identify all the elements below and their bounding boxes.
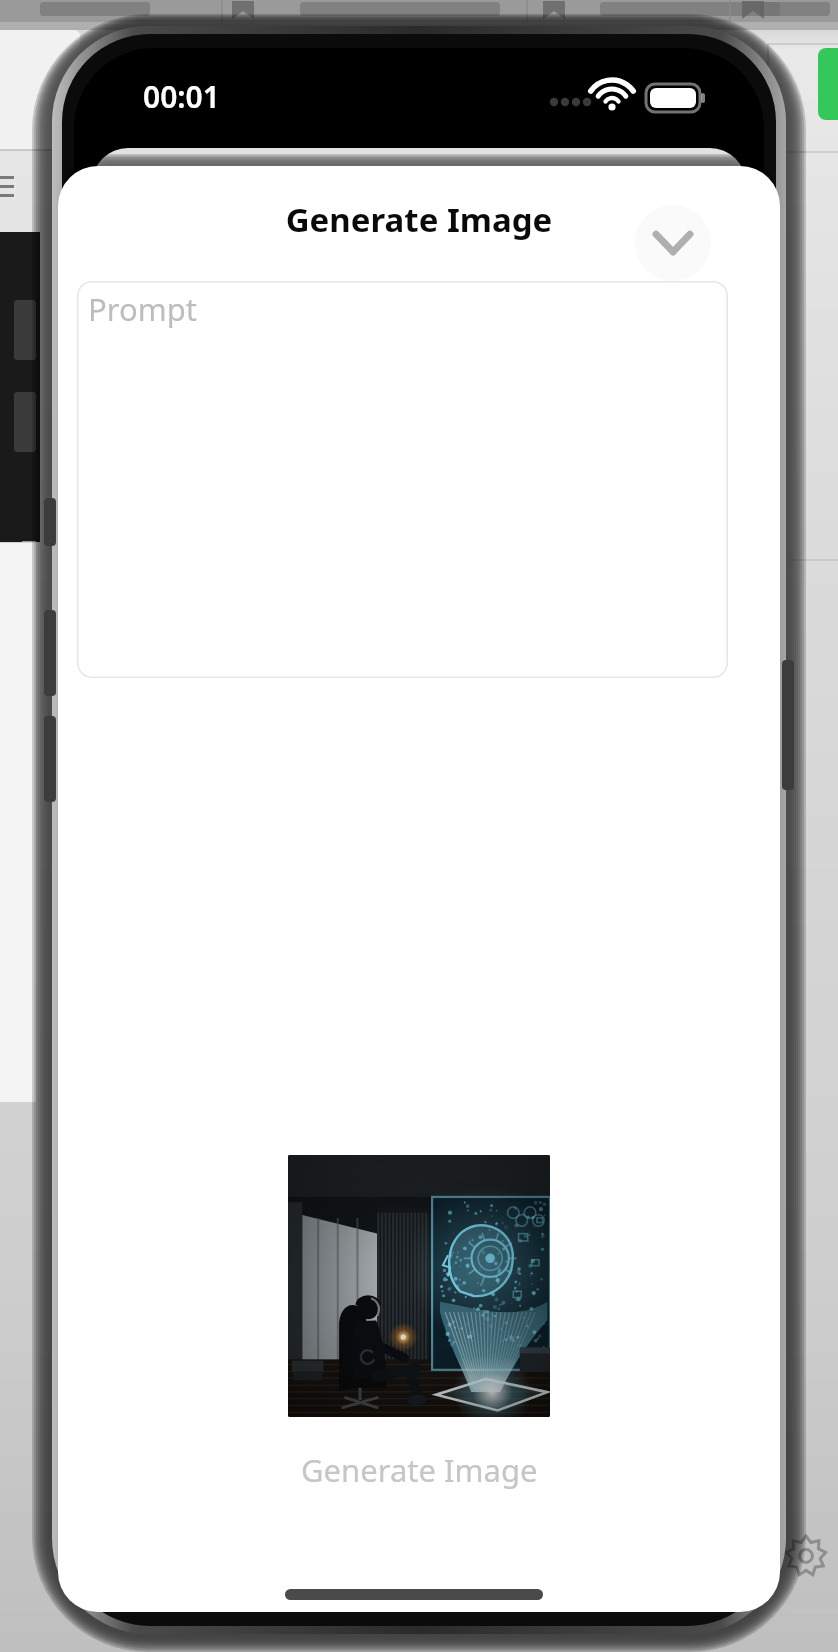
button[interactable]: Prompt [77,281,728,678]
button[interactable]: Generated image preview [288,1155,550,1417]
staticText: Prompt [88,288,197,330]
staticText: Generate Image [0,197,838,242]
staticText: 00:01 [143,76,220,117]
button[interactable]: Generate Image [281,1443,558,1497]
button[interactable]: Collapse sheet [635,205,711,281]
staticText: Generate Image [301,1449,538,1491]
